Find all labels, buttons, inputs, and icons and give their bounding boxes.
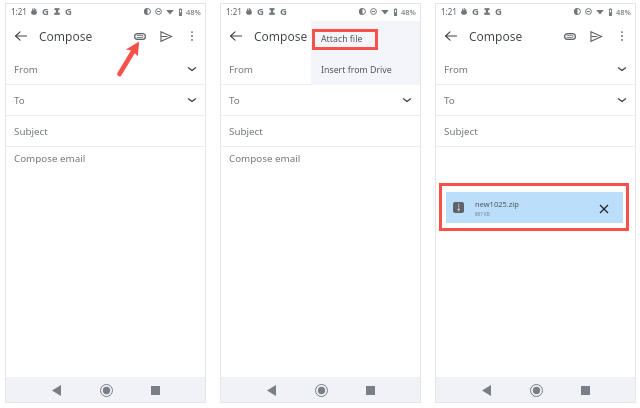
- staticText: To: [14, 94, 25, 107]
- button[interactable]: Insert from Drive: [321, 54, 421, 85]
- button[interactable]: Subject: [435, 116, 636, 146]
- button[interactable]: To: [435, 85, 636, 115]
- button[interactable]: More options: [182, 26, 202, 46]
- staticText: To: [444, 94, 455, 107]
- button[interactable]: Attach file: [344, 25, 366, 47]
- button[interactable]: Recent apps: [145, 380, 165, 400]
- staticText: From: [444, 63, 469, 76]
- staticText: To: [229, 94, 240, 107]
- staticText: From: [229, 63, 254, 76]
- staticText: G: [65, 5, 72, 18]
- staticText: Compose email: [14, 152, 86, 165]
- button[interactable]: To: [220, 85, 421, 115]
- staticText: Compose: [39, 28, 93, 44]
- button[interactable]: Navigate up: [10, 25, 32, 47]
- staticText: Compose email: [229, 152, 301, 165]
- button[interactable]: From: [435, 54, 636, 84]
- button[interactable]: Recent apps: [575, 380, 595, 400]
- staticText: Compose: [254, 28, 308, 44]
- button[interactable]: Send: [155, 25, 177, 47]
- staticText: G: [257, 5, 264, 18]
- button[interactable]: Home: [526, 380, 546, 400]
- staticText: G: [472, 5, 479, 18]
- staticText: From: [14, 63, 39, 76]
- button[interactable]: From: [5, 54, 206, 84]
- staticText: Subject: [229, 125, 263, 138]
- staticText: Subject: [444, 125, 478, 138]
- button[interactable]: More options: [612, 26, 632, 46]
- button[interactable]: Navigate up: [440, 25, 462, 47]
- button[interactable]: Subject: [220, 116, 421, 146]
- staticText: new1025.zip: [475, 199, 519, 209]
- button[interactable]: Recent apps: [360, 380, 380, 400]
- button[interactable]: Navigate up: [225, 25, 247, 47]
- button[interactable]: Home: [96, 380, 116, 400]
- staticText: Compose: [469, 28, 523, 44]
- button[interactable]: Remove attachment: [597, 201, 610, 214]
- button[interactable]: Send: [370, 25, 392, 47]
- staticText: G: [42, 5, 49, 18]
- button[interactable]: Home: [311, 380, 331, 400]
- staticText: G: [495, 5, 502, 18]
- button[interactable]: Attach file: [321, 23, 421, 54]
- button[interactable]: Back: [261, 380, 281, 400]
- button[interactable]: Subject: [5, 116, 206, 146]
- button[interactable]: To: [5, 85, 206, 115]
- button[interactable]: Send: [585, 25, 607, 47]
- staticText: Subject: [14, 125, 48, 138]
- button[interactable]: Attach file: [559, 25, 581, 47]
- button[interactable]: new1025.zip: [446, 192, 623, 223]
- staticText: Attach file: [321, 33, 363, 45]
- button[interactable]: Back: [476, 380, 496, 400]
- staticText: 887 KB: [475, 211, 490, 217]
- staticText: 1:21: [226, 6, 242, 17]
- staticText: Insert from Drive: [321, 64, 392, 76]
- button[interactable]: From: [220, 54, 421, 84]
- staticText: 48%: [616, 7, 631, 17]
- staticText: 48%: [401, 7, 416, 17]
- staticText: 1:21: [11, 6, 27, 17]
- button[interactable]: Back: [46, 380, 66, 400]
- staticText: 48%: [186, 7, 201, 17]
- button[interactable]: Attach file: [129, 25, 151, 47]
- staticText: G: [280, 5, 287, 18]
- staticText: 1:21: [441, 6, 457, 17]
